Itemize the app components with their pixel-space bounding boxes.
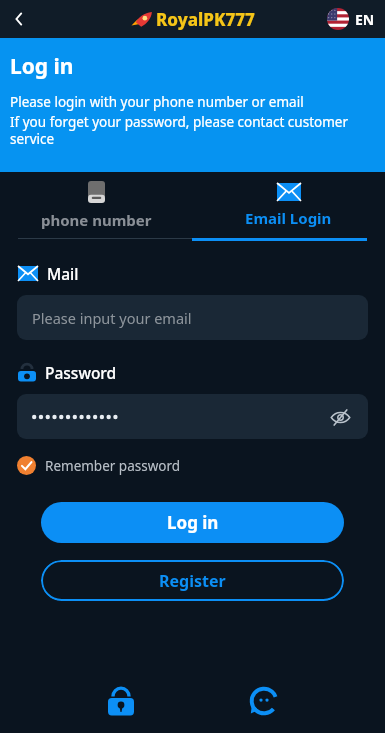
button[interactable]: Remember password bbox=[17, 456, 385, 475]
staticText: Please login with your phone number or e… bbox=[10, 93, 304, 111]
staticText: RoyalPK777 bbox=[156, 8, 255, 31]
staticText: If you forget your password, please cont… bbox=[10, 113, 371, 148]
staticText: phone number bbox=[41, 210, 152, 230]
staticText: Register bbox=[159, 570, 226, 592]
button[interactable]: Back bbox=[0, 0, 38, 38]
staticText: Please input your email bbox=[32, 308, 192, 328]
button[interactable]: Email Login bbox=[192, 172, 385, 238]
staticText: EN bbox=[355, 10, 375, 29]
button[interactable]: EN bbox=[327, 8, 375, 30]
button[interactable]: Please input your email bbox=[17, 295, 368, 340]
button[interactable]: Show password bbox=[17, 394, 368, 439]
staticText: Log in bbox=[10, 52, 74, 81]
staticText: Email Login bbox=[245, 208, 332, 228]
button[interactable]: phone number bbox=[0, 172, 192, 238]
button[interactable]: Customer service bbox=[242, 679, 286, 723]
button[interactable]: Log in bbox=[41, 502, 344, 543]
button[interactable]: Register bbox=[41, 560, 344, 601]
button[interactable]: Security bbox=[99, 679, 143, 723]
staticText: Mail bbox=[47, 263, 79, 284]
staticText: Password bbox=[45, 362, 117, 383]
staticText: Log in bbox=[167, 511, 219, 534]
staticText: Remember password bbox=[45, 457, 181, 475]
button[interactable]: Show password bbox=[327, 404, 353, 430]
